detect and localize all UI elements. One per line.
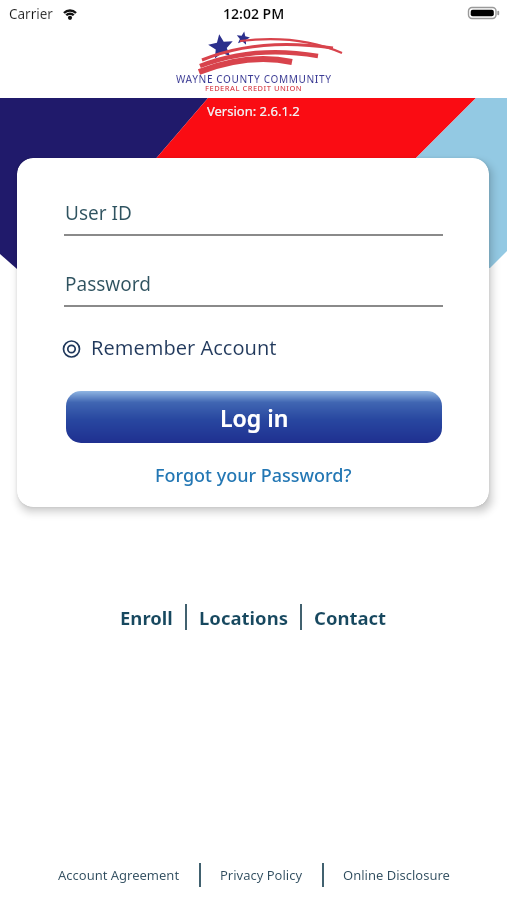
staticText: Forgot your Password? [155,463,352,488]
staticText: Carrier [9,5,53,23]
button[interactable]: Privacy Policy [220,866,303,884]
button[interactable]: Online Disclosure [343,866,450,884]
staticText: WAYNE COUNTY COMMUNITY [176,72,332,86]
staticText: Password [65,271,151,297]
staticText: 12:02 PM [223,4,285,23]
button[interactable]: Contact [314,605,387,630]
button[interactable]: Account Agreement [58,866,180,884]
staticText: Version: 2.6.1.2 [207,102,300,120]
staticText: Contact [314,605,387,630]
staticText: User ID [65,200,132,226]
button[interactable]: Locations [199,605,288,630]
button[interactable]: Enroll [120,605,173,630]
staticText: Account Agreement [58,866,180,884]
button[interactable]: Forgot your Password? [155,463,352,488]
staticText: Privacy Policy [220,866,303,884]
staticText: Locations [199,605,288,630]
staticText: Log in [220,402,289,433]
staticText: Online Disclosure [343,866,450,884]
staticText: Remember Account [91,334,277,361]
button[interactable]: User ID [64,194,443,235]
button[interactable]: Log in [66,391,442,443]
button[interactable]: Password [64,265,443,306]
staticText: Enroll [120,605,173,630]
staticText: FEDERAL CREDIT UNION [205,83,303,93]
button[interactable]: Remember Account [61,330,301,368]
